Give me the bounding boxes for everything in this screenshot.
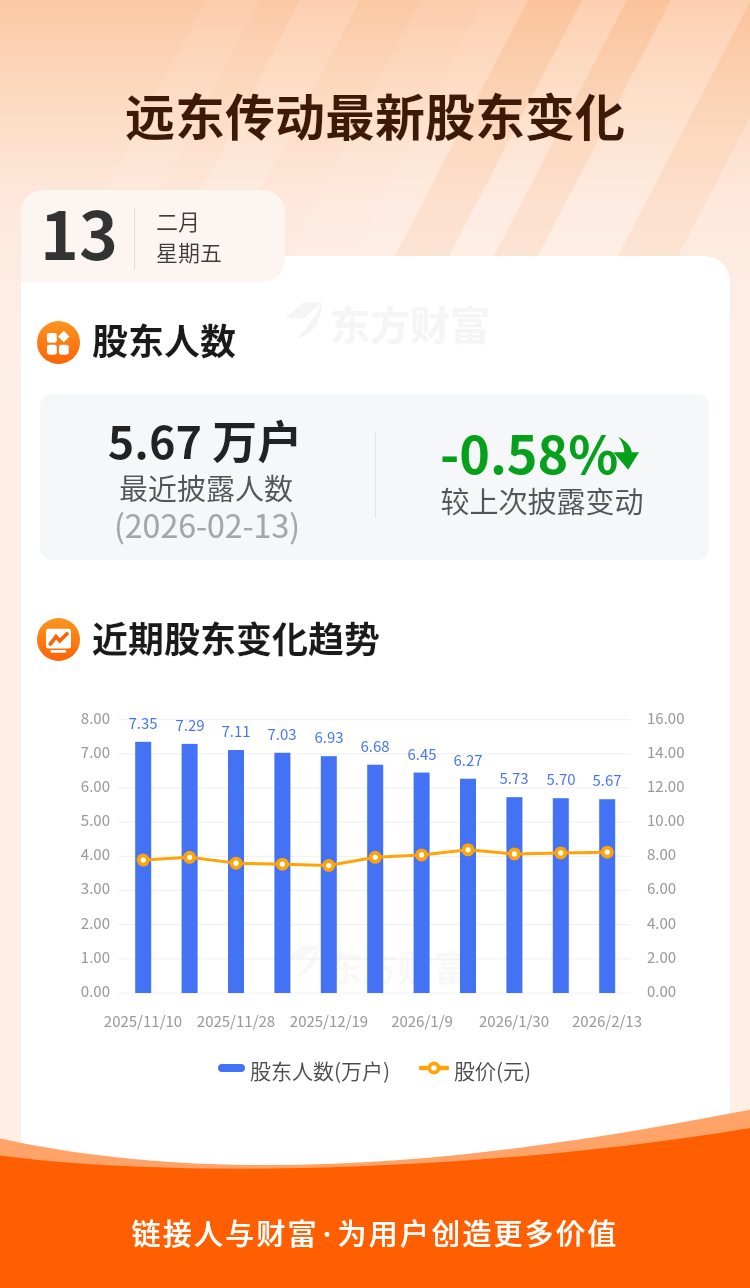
- staticText: 最近披露人数: [26, 466, 386, 508]
- staticText: 2.00: [50, 912, 110, 934]
- staticText: 5.00: [50, 809, 110, 831]
- staticText: 股价(元): [454, 1055, 532, 1085]
- staticText: 6.27: [438, 749, 498, 771]
- staticText: 2025/11/28: [176, 1010, 296, 1032]
- staticText: 0.00: [50, 980, 110, 1002]
- staticText: 股东人数(万户): [250, 1055, 391, 1085]
- staticText: 链接人与财富·为用户创造更多价值: [0, 1211, 750, 1253]
- staticText: 5.67: [577, 769, 637, 791]
- staticText: 股东人数: [92, 313, 237, 365]
- staticText: 3.00: [50, 877, 110, 899]
- staticText: 0.00: [647, 980, 717, 1002]
- staticText: 近期股东变化趋势: [92, 611, 381, 663]
- staticText: 5.67 万户: [25, 407, 385, 472]
- button[interactable]: 13: [21, 190, 285, 282]
- button[interactable]: 股东人数: [37, 321, 80, 364]
- staticText: 东方财富: [330, 294, 490, 352]
- staticText: 7.00: [50, 741, 110, 763]
- staticText: 5.70: [531, 768, 591, 790]
- staticText: 10.00: [647, 809, 717, 831]
- staticText: 2025/12/19: [269, 1010, 389, 1032]
- staticText: 7.35: [113, 712, 173, 734]
- staticText: 2.00: [647, 946, 717, 968]
- staticText: 2026/1/30: [454, 1010, 574, 1032]
- staticText: 13: [40, 190, 118, 275]
- staticText: 远东传动最新股东变化: [0, 78, 750, 150]
- staticText: -0.58%: [440, 414, 619, 489]
- staticText: 2026/2/13: [547, 1010, 667, 1032]
- staticText: 6.93: [299, 726, 359, 748]
- staticText: 1.00: [50, 946, 110, 968]
- staticText: 2026/1/9: [362, 1010, 482, 1032]
- staticText: 较上次披露变动: [362, 479, 722, 521]
- staticText: 4.00: [647, 912, 717, 934]
- staticText: 7.29: [160, 714, 220, 736]
- staticText: 7.11: [206, 720, 266, 742]
- staticText: 东方财富: [326, 940, 471, 992]
- staticText: 6.00: [647, 877, 717, 899]
- staticText: 8.00: [50, 707, 110, 729]
- staticText: 5.73: [484, 767, 544, 789]
- staticText: 14.00: [647, 741, 717, 763]
- staticText: (2026-02-13): [27, 501, 387, 547]
- staticText: 4.00: [50, 843, 110, 865]
- staticText: 12.00: [647, 775, 717, 797]
- button[interactable]: 近期股东变化趋势: [37, 618, 80, 661]
- staticText: 7.03: [252, 723, 312, 745]
- button[interactable]: [40, 394, 709, 560]
- staticText: 8.00: [647, 843, 717, 865]
- staticText: 6.45: [392, 743, 452, 765]
- staticText: 星期五: [156, 235, 223, 267]
- staticText: 2025/11/10: [83, 1010, 203, 1032]
- staticText: 16.00: [647, 707, 717, 729]
- staticText: 二月: [156, 204, 201, 236]
- staticText: 6.68: [345, 735, 405, 757]
- staticText: 6.00: [50, 775, 110, 797]
